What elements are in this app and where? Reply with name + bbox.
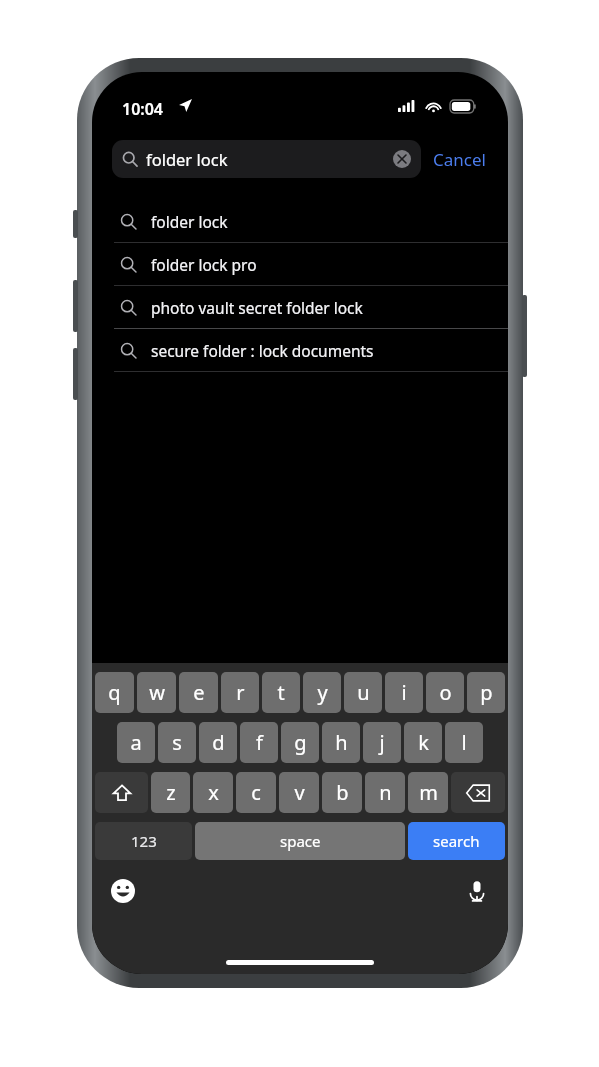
staticText: photo vault secret folder lock bbox=[151, 297, 363, 318]
staticText: h bbox=[335, 729, 348, 756]
button[interactable]: secure folder : lock documents bbox=[92, 329, 508, 371]
staticText: t bbox=[277, 679, 285, 706]
staticText: 10:04 bbox=[122, 98, 164, 120]
button[interactable]: w bbox=[137, 672, 176, 713]
button[interactable]: 123 bbox=[95, 822, 192, 860]
staticText: i bbox=[401, 679, 407, 706]
button[interactable]: photo vault secret folder lock bbox=[92, 286, 508, 328]
staticText: a bbox=[130, 729, 142, 756]
staticText: n bbox=[379, 779, 392, 806]
button[interactable]: v bbox=[279, 772, 319, 813]
button[interactable]: search bbox=[408, 822, 505, 860]
button[interactable]: y bbox=[303, 672, 341, 713]
staticText: v bbox=[294, 779, 305, 806]
staticText: 123 bbox=[131, 831, 157, 851]
staticText: o bbox=[439, 679, 452, 706]
staticText: k bbox=[418, 729, 429, 756]
staticText: p bbox=[480, 679, 493, 706]
button[interactable]: p bbox=[467, 672, 505, 713]
staticText: Cancel bbox=[433, 148, 486, 171]
staticText: s bbox=[172, 729, 182, 756]
button[interactable]: g bbox=[281, 722, 319, 763]
staticText: search bbox=[433, 831, 480, 851]
button[interactable]: folder lock bbox=[92, 200, 508, 242]
staticText: space bbox=[280, 831, 321, 851]
button[interactable]: Clear text bbox=[393, 150, 411, 168]
button[interactable]: q bbox=[95, 672, 134, 713]
button[interactable]: h bbox=[322, 722, 360, 763]
button[interactable]: Emoji bbox=[106, 874, 140, 908]
staticText: folder lock pro bbox=[151, 254, 257, 275]
staticText: b bbox=[336, 779, 349, 806]
staticText: j bbox=[379, 729, 385, 756]
staticText: secure folder : lock documents bbox=[151, 340, 374, 361]
staticText: q bbox=[108, 679, 121, 706]
button[interactable]: t bbox=[262, 672, 300, 713]
button[interactable]: d bbox=[199, 722, 237, 763]
button[interactable]: Cancel bbox=[421, 144, 488, 175]
button[interactable]: e bbox=[179, 672, 218, 713]
button[interactable]: space bbox=[195, 822, 405, 860]
button[interactable]: x bbox=[193, 772, 233, 813]
button[interactable]: n bbox=[365, 772, 405, 813]
button[interactable]: Shift bbox=[95, 772, 148, 813]
button[interactable]: i bbox=[385, 672, 423, 713]
staticText: z bbox=[166, 779, 176, 806]
staticText: f bbox=[256, 729, 263, 756]
staticText: folder lock bbox=[151, 211, 228, 232]
button[interactable]: s bbox=[158, 722, 196, 763]
staticText: w bbox=[149, 679, 165, 706]
button[interactable]: Voice input bbox=[460, 874, 494, 908]
staticText: x bbox=[208, 779, 219, 806]
button[interactable]: a bbox=[117, 722, 155, 763]
button[interactable]: o bbox=[426, 672, 464, 713]
button[interactable]: Backspace bbox=[451, 772, 505, 813]
staticText: l bbox=[461, 729, 467, 756]
button[interactable]: u bbox=[344, 672, 382, 713]
button[interactable]: l bbox=[445, 722, 483, 763]
staticText: folder lock bbox=[146, 148, 228, 170]
staticText: d bbox=[212, 729, 225, 756]
button[interactable]: f bbox=[240, 722, 278, 763]
button[interactable]: b bbox=[322, 772, 362, 813]
button[interactable]: k bbox=[404, 722, 442, 763]
button[interactable]: r bbox=[221, 672, 259, 713]
button[interactable]: c bbox=[236, 772, 276, 813]
button[interactable]: z bbox=[151, 772, 190, 813]
staticText: e bbox=[193, 679, 205, 706]
button[interactable]: m bbox=[408, 772, 448, 813]
button[interactable]: j bbox=[363, 722, 401, 763]
button[interactable]: folder lock bbox=[112, 140, 421, 178]
staticText: g bbox=[294, 729, 307, 756]
staticText: y bbox=[317, 679, 328, 706]
button[interactable]: folder lock pro bbox=[92, 243, 508, 285]
staticText: c bbox=[251, 779, 261, 806]
staticText: r bbox=[236, 679, 245, 706]
staticText: u bbox=[357, 679, 370, 706]
staticText: m bbox=[419, 779, 438, 806]
